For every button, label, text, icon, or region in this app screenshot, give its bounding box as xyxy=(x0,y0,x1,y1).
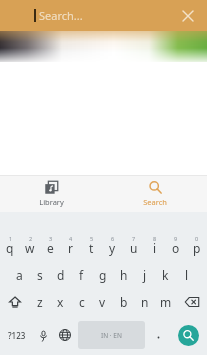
button[interactable]: j xyxy=(134,261,155,288)
staticText: a xyxy=(16,267,23,283)
staticText: 5 xyxy=(90,235,94,242)
button[interactable]: m xyxy=(155,288,176,315)
button[interactable]: IN · EN xyxy=(78,321,145,349)
button[interactable]: Close search xyxy=(175,3,201,29)
button[interactable]: o xyxy=(165,234,186,261)
staticText: f xyxy=(79,267,84,283)
button[interactable]: c xyxy=(71,288,92,315)
staticText: m xyxy=(160,294,172,310)
staticText: 7 xyxy=(132,235,136,242)
staticText: x xyxy=(57,294,64,310)
staticText: e xyxy=(47,240,54,256)
staticText: Search... xyxy=(39,8,83,23)
staticText: k xyxy=(162,267,169,283)
button[interactable]: Backspace xyxy=(176,288,207,315)
button[interactable]: q xyxy=(0,234,20,261)
staticText: d xyxy=(57,267,65,283)
staticText: s xyxy=(37,267,43,283)
button[interactable]: z xyxy=(30,288,50,315)
staticText: h xyxy=(120,267,128,283)
button[interactable]: Search xyxy=(178,325,199,346)
button[interactable]: u xyxy=(123,234,144,261)
staticText: g xyxy=(99,267,107,283)
button[interactable]: w xyxy=(20,234,40,261)
staticText: b xyxy=(120,294,128,310)
button[interactable]: a xyxy=(9,261,29,288)
staticText: o xyxy=(172,240,180,256)
button[interactable]: x xyxy=(50,288,71,315)
staticText: v xyxy=(99,294,106,310)
button[interactable]: Comma and voice input xyxy=(33,315,54,355)
button[interactable]: d xyxy=(50,261,71,288)
staticText: 2 xyxy=(29,235,33,242)
button[interactable]: k xyxy=(155,261,176,288)
button[interactable]: y xyxy=(102,234,123,261)
staticText: l xyxy=(185,267,189,283)
staticText: r xyxy=(68,240,73,256)
button[interactable]: i xyxy=(144,234,165,261)
button[interactable]: l xyxy=(176,261,197,288)
staticText: i xyxy=(153,240,157,256)
button[interactable]: Shift xyxy=(0,288,30,315)
button[interactable]: Library xyxy=(0,176,103,212)
staticText: 1 xyxy=(9,235,13,242)
button[interactable]: Change language xyxy=(54,315,75,355)
button[interactable]: g xyxy=(92,261,113,288)
button[interactable]: s xyxy=(29,261,50,288)
button[interactable]: e xyxy=(40,234,60,261)
button[interactable]: v xyxy=(92,288,113,315)
staticText: 3 xyxy=(49,235,53,242)
staticText: 0 xyxy=(195,235,199,242)
button[interactable]: h xyxy=(113,261,134,288)
staticText: p xyxy=(193,240,201,256)
button[interactable]: ?123 xyxy=(0,315,33,355)
staticText: 9 xyxy=(174,235,178,242)
staticText: 6 xyxy=(111,235,115,242)
staticText: y xyxy=(109,240,116,256)
staticText: n xyxy=(141,294,149,310)
staticText: u xyxy=(130,240,138,256)
staticText: j xyxy=(143,267,147,283)
button[interactable]: r xyxy=(60,234,81,261)
staticText: c xyxy=(79,294,85,310)
button[interactable]: p xyxy=(186,234,207,261)
staticText: ?123 xyxy=(8,330,26,341)
staticText: w xyxy=(25,240,35,256)
staticText: 8 xyxy=(153,235,157,242)
button[interactable]: n xyxy=(134,288,155,315)
staticText: 4 xyxy=(69,235,73,242)
button[interactable]: Search xyxy=(103,176,207,212)
button[interactable]: f xyxy=(71,261,92,288)
staticText: IN · EN xyxy=(101,331,122,340)
staticText: Library xyxy=(39,197,64,207)
staticText: q xyxy=(6,240,14,256)
button[interactable]: Period xyxy=(148,315,169,355)
button[interactable]: b xyxy=(113,288,134,315)
staticText: z xyxy=(37,294,43,310)
button[interactable]: t xyxy=(81,234,102,261)
staticText: Search xyxy=(143,197,167,207)
staticText: t xyxy=(89,240,94,256)
